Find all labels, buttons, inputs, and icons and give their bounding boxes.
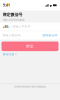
- staticText: 请输入手机号码完成绑定: [3, 18, 25, 21]
- button[interactable]: 获取验证码: [42, 31, 60, 39]
- staticText: 请输入手机号: [13, 25, 31, 28]
- button[interactable]: 绑定: [1, 41, 58, 51]
- staticText: 登录即代表同意用户协议与隐私政策: [14, 85, 46, 88]
- button[interactable]: 遇到问题？: [0, 0, 18, 56]
- staticText: 请输入验证码: [3, 33, 21, 37]
- staticText: 绑定微信号: [3, 12, 23, 17]
- staticText: 获取验证码: [42, 33, 57, 37]
- staticText: 绑定: [26, 44, 34, 48]
- staticText: 遇到问题？: [3, 53, 18, 56]
- staticText: +86: [3, 24, 9, 29]
- staticText: 9:41: [3, 3, 10, 7]
